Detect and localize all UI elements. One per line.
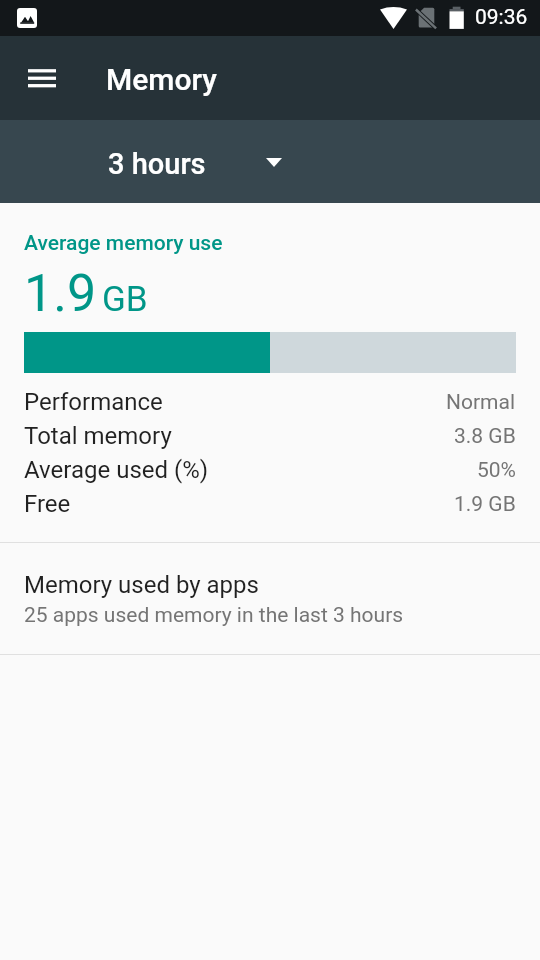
staticText: Free [24,490,71,518]
staticText: 3 hours [108,147,206,181]
button[interactable]: Open navigation menu [14,50,70,106]
staticText: Memory used by apps [24,571,259,599]
staticText: Total memory [24,422,172,450]
staticText: 50% [477,458,516,483]
staticText: Memory [106,62,217,97]
staticText: 1.9 [24,263,97,324]
staticText: Average memory use [24,231,223,256]
button[interactable]: Memory used by apps [0,543,540,654]
staticText: 09:36 [475,5,528,30]
staticText: 25 apps used memory in the last 3 hours [24,603,404,628]
staticText: Performance [24,388,163,416]
button[interactable]: 3 hours [88,133,302,191]
staticText: 3.8 GB [454,424,516,449]
staticText: 1.9 GB [454,492,516,517]
staticText: GB [102,279,148,320]
staticText: Average used (%) [24,456,209,484]
staticText: Normal [446,390,516,415]
